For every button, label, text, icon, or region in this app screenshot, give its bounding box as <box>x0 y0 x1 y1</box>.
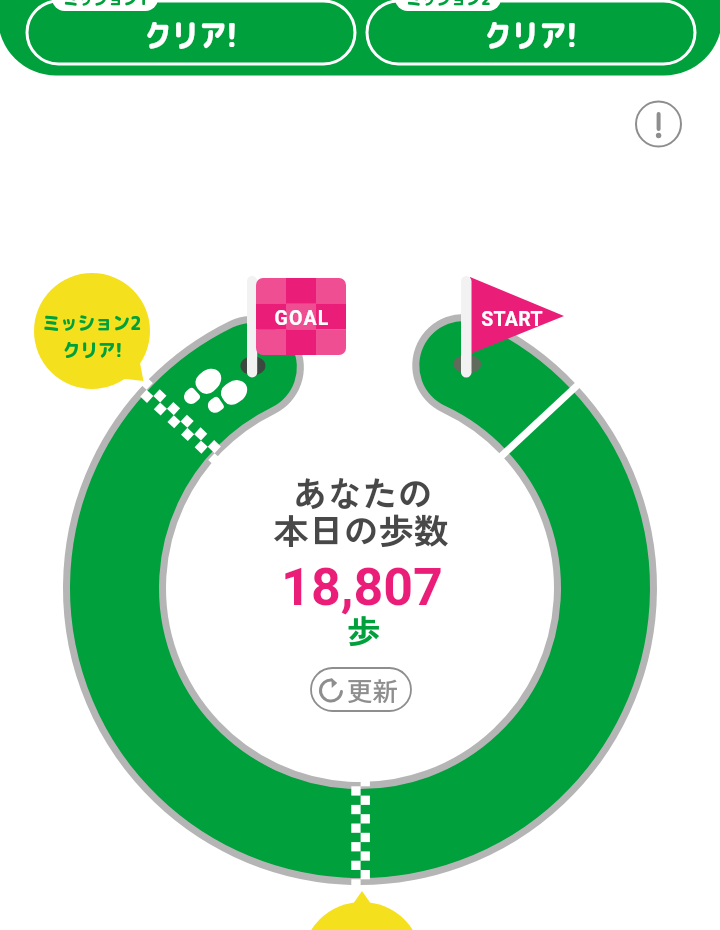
staticText: 18,807 <box>281 557 443 618</box>
staticText: クリア! <box>144 13 238 58</box>
staticText: START <box>481 308 543 331</box>
button[interactable]: クリア! <box>27 1 355 64</box>
staticText: ミッション2 <box>42 310 142 337</box>
button[interactable]: 更新 <box>311 668 411 712</box>
staticText: 歩 <box>347 606 380 654</box>
staticText: ミッション2 <box>406 0 491 11</box>
button[interactable]: Information <box>633 99 684 150</box>
staticText: 本日の歩数 <box>273 503 449 554</box>
staticText: ミッション1 <box>63 0 148 11</box>
staticText: クリア! <box>63 337 122 364</box>
staticText: クリア! <box>484 13 578 58</box>
staticText: GOAL <box>274 307 330 330</box>
button[interactable]: クリア! <box>367 1 695 64</box>
staticText: あなたの <box>292 466 433 517</box>
staticText: 更新 <box>346 671 399 709</box>
